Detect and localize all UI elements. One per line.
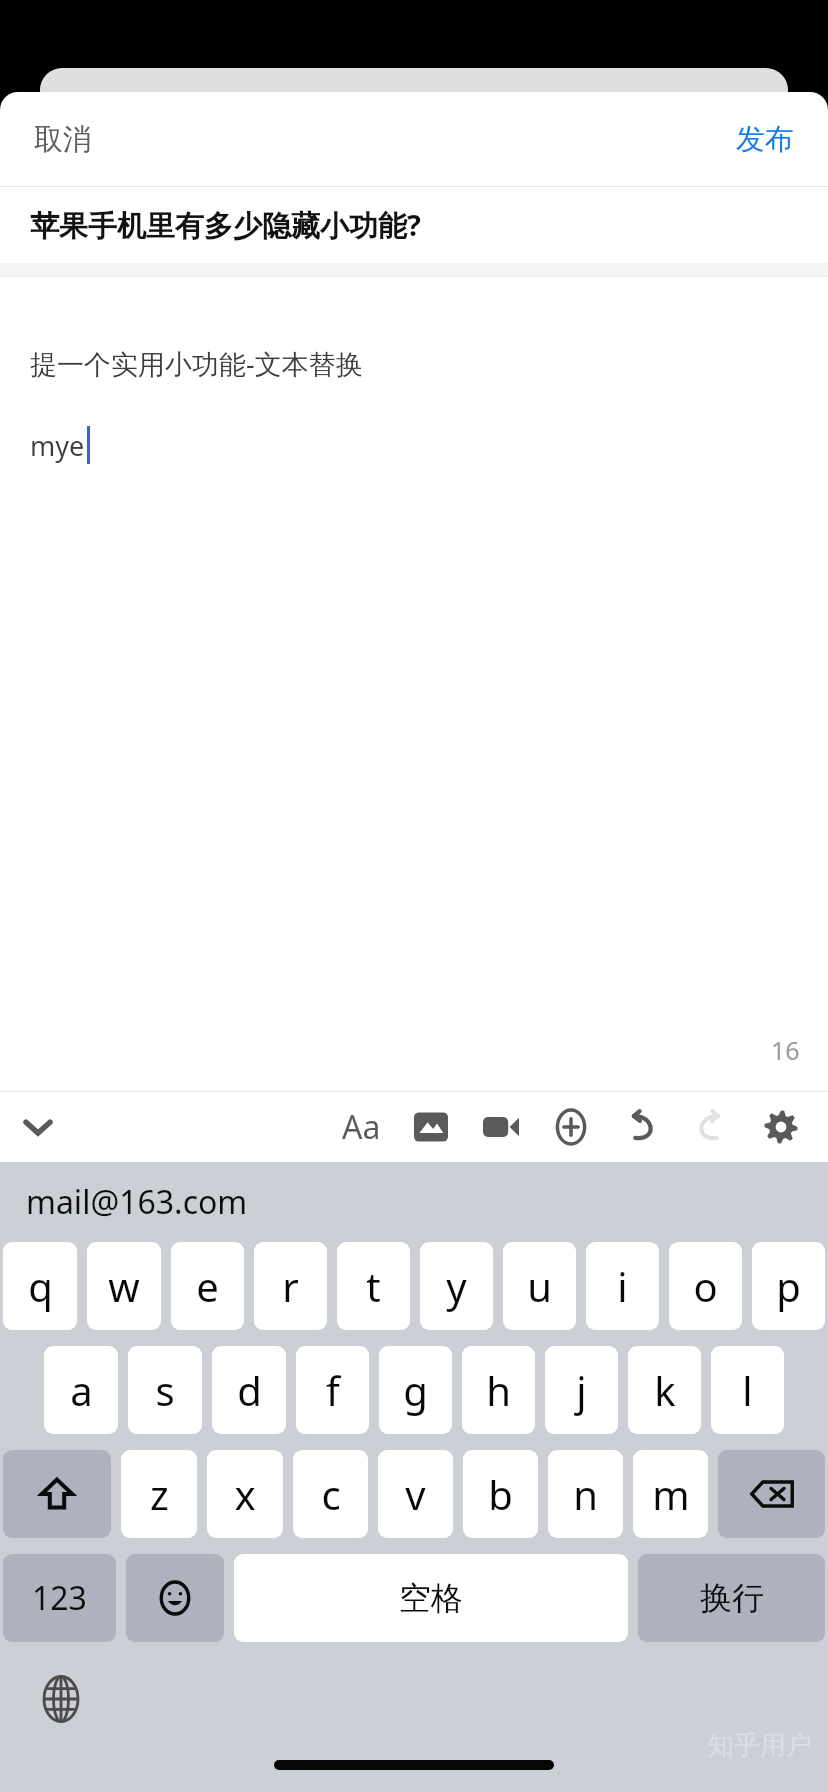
staticText: x	[234, 1467, 256, 1521]
button[interactable]: 发布	[720, 111, 810, 168]
staticText: v	[405, 1467, 426, 1521]
button[interactable]: q	[3, 1242, 77, 1330]
button[interactable]: m	[633, 1450, 708, 1538]
staticText: e	[196, 1259, 219, 1313]
staticText: 提一个实用小功能-文本替换	[30, 345, 363, 382]
button[interactable]: 提一个实用小功能-文本替换	[0, 277, 828, 1091]
staticText: m	[652, 1467, 690, 1521]
button[interactable]: l	[711, 1346, 784, 1434]
button[interactable]: n	[548, 1450, 623, 1538]
staticText: a	[70, 1363, 93, 1417]
staticText: r	[282, 1259, 299, 1313]
button[interactable]: 换行	[638, 1554, 825, 1642]
button[interactable]: Insert image	[396, 1095, 466, 1159]
button[interactable]: Insert video	[466, 1095, 536, 1159]
staticText: k	[654, 1363, 676, 1417]
button[interactable]: i	[586, 1242, 659, 1330]
button[interactable]: p	[752, 1242, 825, 1330]
button[interactable]: 取消	[18, 111, 108, 168]
button[interactable]: 空格	[234, 1554, 628, 1642]
button[interactable]: t	[337, 1242, 410, 1330]
button[interactable]: 123	[3, 1554, 116, 1642]
button[interactable]: o	[669, 1242, 742, 1330]
staticText: 取消	[34, 121, 92, 158]
staticText: j	[576, 1363, 587, 1417]
staticText: y	[446, 1259, 467, 1313]
staticText: c	[321, 1467, 341, 1521]
button[interactable]: w	[87, 1242, 161, 1330]
staticText: d	[237, 1363, 262, 1417]
button[interactable]: r	[254, 1242, 327, 1330]
button[interactable]: Hide keyboard	[10, 1099, 66, 1155]
staticText: u	[527, 1259, 552, 1313]
staticText: 知乎用户	[708, 1729, 812, 1762]
button[interactable]: Redo	[676, 1095, 746, 1159]
staticText: t	[366, 1259, 381, 1313]
button[interactable]: v	[378, 1450, 453, 1538]
staticText: n	[573, 1467, 598, 1521]
staticText: s	[155, 1363, 175, 1417]
button[interactable]: k	[628, 1346, 701, 1434]
button[interactable]: Shift	[3, 1450, 111, 1538]
button[interactable]: s	[128, 1346, 202, 1434]
staticText: mye	[30, 427, 85, 464]
button[interactable]: x	[207, 1450, 283, 1538]
staticText: 123	[32, 1576, 87, 1620]
staticText: w	[108, 1259, 140, 1313]
staticText: g	[403, 1363, 428, 1417]
button[interactable]: y	[420, 1242, 493, 1330]
button[interactable]: 苹果手机里有多少隐藏小功能?	[0, 187, 828, 263]
staticText: f	[326, 1363, 340, 1417]
staticText: b	[488, 1467, 513, 1521]
button[interactable]: z	[121, 1450, 197, 1538]
button[interactable]: d	[212, 1346, 286, 1434]
staticText: 空格	[399, 1578, 463, 1618]
button[interactable]: Undo	[606, 1095, 676, 1159]
button[interactable]: f	[296, 1346, 369, 1434]
button[interactable]: b	[463, 1450, 538, 1538]
staticText: 苹果手机里有多少隐藏小功能?	[30, 205, 421, 245]
button[interactable]: u	[503, 1242, 576, 1330]
button[interactable]: g	[379, 1346, 452, 1434]
staticText: z	[150, 1467, 169, 1521]
button[interactable]: Backspace	[718, 1450, 825, 1538]
button[interactable]: Emoji	[126, 1554, 224, 1642]
staticText: 换行	[700, 1578, 764, 1618]
staticText: q	[28, 1259, 53, 1313]
button[interactable]: Settings	[746, 1095, 816, 1159]
staticText: i	[617, 1259, 628, 1313]
button[interactable]: j	[545, 1346, 618, 1434]
staticText: p	[776, 1259, 801, 1313]
staticText: 16	[771, 1033, 800, 1067]
staticText: 发布	[736, 121, 794, 158]
button[interactable]: Switch language	[30, 1668, 92, 1730]
staticText: Aa	[342, 1105, 381, 1149]
button[interactable]: c	[293, 1450, 368, 1538]
button[interactable]: h	[462, 1346, 535, 1434]
button[interactable]: Text format	[326, 1095, 396, 1159]
button[interactable]: mail@163.com	[0, 1162, 828, 1242]
staticText: l	[742, 1363, 753, 1417]
staticText: o	[693, 1259, 718, 1313]
staticText: h	[486, 1363, 511, 1417]
button[interactable]: a	[44, 1346, 118, 1434]
button[interactable]: e	[171, 1242, 244, 1330]
button[interactable]: Add	[536, 1095, 606, 1159]
staticText: mail@163.com	[26, 1180, 248, 1224]
